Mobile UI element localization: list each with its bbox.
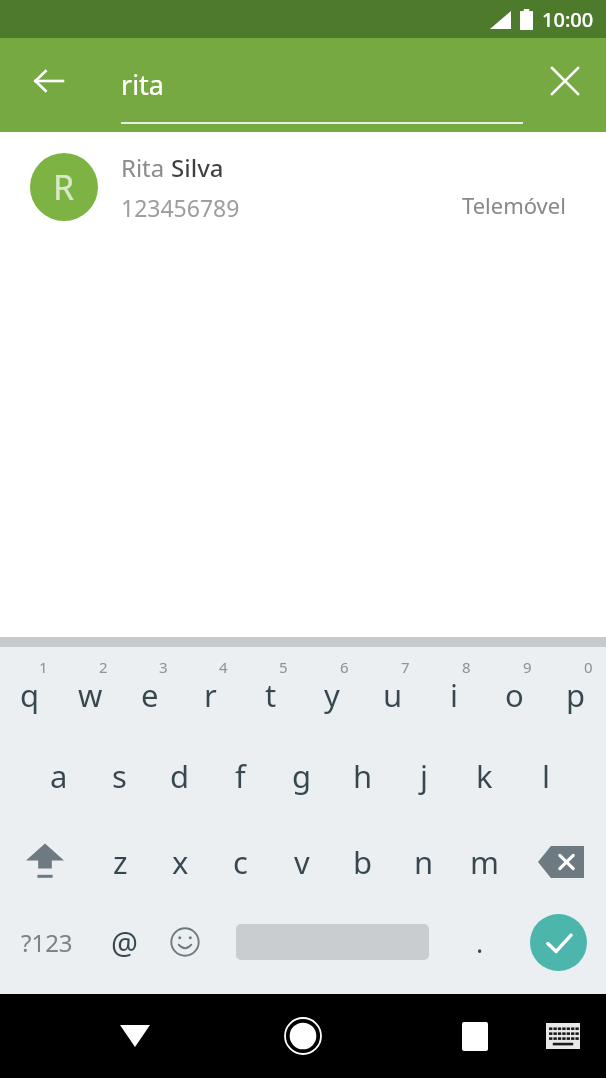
button[interactable]: 6	[301, 647, 362, 733]
button[interactable]: s	[89, 733, 149, 819]
button[interactable]: Switch keyboard	[534, 1007, 592, 1065]
staticText: b	[353, 841, 373, 883]
button[interactable]: v	[271, 819, 332, 905]
button[interactable]: Clear	[536, 52, 594, 110]
staticText: r	[204, 674, 217, 716]
button[interactable]: g	[271, 733, 332, 819]
staticText: Telemóvel	[462, 190, 566, 220]
button[interactable]: x	[150, 819, 210, 905]
button[interactable]: 9	[484, 647, 545, 733]
staticText: 6	[340, 657, 349, 677]
button[interactable]: l	[515, 733, 576, 819]
button[interactable]: .	[450, 905, 510, 979]
staticText: m	[470, 841, 499, 883]
button[interactable]: Backspace	[515, 819, 606, 905]
staticText: t	[265, 674, 277, 716]
button[interactable]: At sign	[94, 905, 155, 979]
button[interactable]: 5	[240, 647, 301, 733]
staticText: rita	[121, 66, 165, 103]
button[interactable]: d	[149, 733, 210, 819]
button[interactable]: z	[90, 819, 150, 905]
staticText: 2	[99, 657, 108, 677]
button[interactable]: 3	[120, 647, 180, 733]
button[interactable]: Home	[271, 1004, 335, 1068]
button[interactable]: f	[210, 733, 271, 819]
staticText: c	[233, 841, 248, 883]
staticText: f	[235, 755, 246, 797]
staticText: 5	[279, 657, 288, 677]
button[interactable]: rita	[121, 38, 523, 132]
staticText: .	[476, 924, 484, 961]
staticText: a	[50, 755, 68, 797]
staticText: n	[414, 841, 434, 883]
staticText: g	[292, 755, 312, 797]
staticText: 4	[219, 657, 228, 677]
button[interactable]: a	[29, 733, 89, 819]
staticText: 7	[401, 657, 410, 677]
button[interactable]: 0	[545, 647, 606, 733]
staticText: 10:00	[542, 6, 594, 33]
staticText: 9	[523, 657, 532, 677]
staticText: x	[172, 841, 189, 883]
button[interactable]: 1	[0, 647, 60, 733]
button[interactable]: Space	[215, 905, 450, 979]
button[interactable]: Emoji	[155, 905, 215, 979]
staticText: i	[450, 674, 458, 716]
button[interactable]: R	[0, 132, 606, 242]
staticText: h	[353, 755, 373, 797]
button[interactable]: k	[454, 733, 515, 819]
staticText: s	[112, 755, 127, 797]
staticText: w	[78, 674, 103, 716]
button[interactable]: h	[332, 733, 393, 819]
staticText: j	[420, 755, 428, 797]
button[interactable]: ?123	[0, 905, 94, 979]
button[interactable]: Recents	[443, 1004, 507, 1068]
button[interactable]: n	[393, 819, 454, 905]
staticText: u	[383, 674, 403, 716]
staticText: 0	[584, 657, 593, 677]
button[interactable]: m	[454, 819, 515, 905]
button[interactable]: 2	[60, 647, 120, 733]
button[interactable]: 4	[180, 647, 240, 733]
staticText: R	[53, 164, 75, 210]
staticText: @	[111, 922, 138, 963]
staticText: Silva	[171, 151, 224, 184]
staticText: l	[542, 755, 550, 797]
staticText: y	[324, 674, 340, 716]
button[interactable]: c	[210, 819, 271, 905]
staticText: ?123	[21, 926, 73, 959]
button[interactable]: Back	[103, 1004, 167, 1068]
staticText: v	[294, 841, 310, 883]
staticText: 1	[39, 657, 48, 677]
button[interactable]: Back	[18, 51, 78, 111]
staticText: e	[141, 674, 159, 716]
staticText: p	[566, 674, 586, 716]
staticText: Rita	[121, 151, 171, 184]
button[interactable]: Enter	[510, 905, 606, 979]
staticText: o	[505, 674, 524, 716]
staticText: d	[170, 755, 190, 797]
button[interactable]: j	[393, 733, 454, 819]
staticText: q	[20, 674, 40, 716]
staticText: 3	[159, 657, 168, 677]
button[interactable]: Shift	[0, 819, 90, 905]
staticText: k	[476, 755, 493, 797]
staticText: z	[113, 841, 128, 883]
button[interactable]: b	[332, 819, 393, 905]
staticText: 8	[462, 657, 471, 677]
staticText: 123456789	[121, 192, 240, 223]
button[interactable]: 7	[362, 647, 423, 733]
button[interactable]: 8	[423, 647, 484, 733]
